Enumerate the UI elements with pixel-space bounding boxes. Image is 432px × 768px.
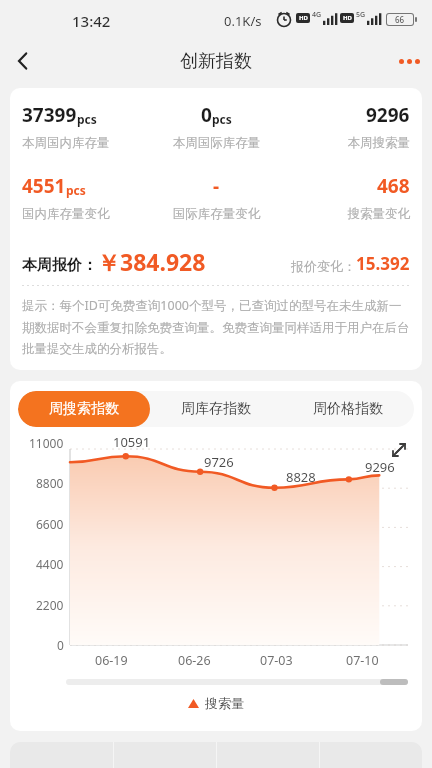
button[interactable]: Expand chart — [386, 437, 412, 463]
staticText: 搜索量变化 — [281, 206, 410, 222]
staticText: HD — [299, 14, 308, 22]
staticText: 9726 — [204, 453, 234, 471]
button[interactable]: More options — [386, 38, 432, 84]
staticText: 4551 — [22, 173, 66, 199]
staticText: 0 — [201, 102, 212, 128]
button[interactable]: 周库存指数 — [150, 391, 282, 427]
staticText: 5G — [356, 10, 366, 20]
staticText: 本周国际库存量 — [152, 135, 281, 151]
staticText: pcs — [212, 111, 232, 127]
staticText: 9296 — [365, 458, 395, 476]
staticText: 本周报价： — [22, 256, 97, 275]
staticText: 报价变化： — [291, 258, 356, 274]
staticText: 周库存指数 — [181, 400, 251, 418]
staticText: 06-19 — [95, 652, 128, 669]
staticText: HD — [343, 14, 352, 22]
staticText: 9296 — [366, 102, 410, 128]
staticText: 创新指数 — [180, 50, 252, 73]
staticText: 国际库存量变化 — [152, 206, 281, 222]
staticText: - — [213, 173, 220, 199]
staticText: 本周搜索量 — [281, 135, 410, 151]
staticText: 11000 — [29, 435, 64, 449]
button[interactable]: Back — [0, 38, 46, 84]
staticText: 8828 — [286, 468, 316, 486]
staticText: pcs — [77, 111, 97, 127]
staticText: 提示：每个ID可免费查询1000个型号，已查询过的型号在未生成新一期数据时不会重… — [22, 297, 410, 356]
staticText: 15.392 — [356, 252, 410, 275]
staticText: 37399 — [22, 102, 77, 128]
staticText: 07-03 — [260, 652, 293, 669]
staticText: 0.1K/s — [224, 12, 262, 30]
staticText: 搜索量 — [205, 695, 244, 711]
staticText: 10591 — [113, 433, 151, 451]
staticText: 4400 — [36, 556, 64, 570]
staticText: 8800 — [36, 475, 64, 489]
staticText: 周价格指数 — [313, 400, 383, 418]
staticText: 468 — [377, 173, 410, 199]
staticText: 07-10 — [346, 652, 379, 669]
staticText: 13:42 — [72, 11, 111, 31]
staticText: 6600 — [36, 516, 64, 530]
staticText: 0 — [57, 637, 64, 651]
button[interactable]: 周价格指数 — [282, 391, 414, 427]
staticText: 国内库存量变化 — [22, 206, 152, 222]
button[interactable]: 周搜索指数 — [18, 391, 150, 427]
staticText: 4G — [312, 10, 322, 20]
staticText: 66 — [395, 14, 405, 25]
staticText: 周搜索指数 — [49, 400, 119, 418]
staticText: ￥384.928 — [97, 246, 206, 277]
staticText: 本周国内库存量 — [22, 135, 152, 151]
staticText: pcs — [66, 182, 86, 198]
staticText: 2200 — [36, 597, 64, 611]
staticText: 06-26 — [178, 652, 211, 669]
